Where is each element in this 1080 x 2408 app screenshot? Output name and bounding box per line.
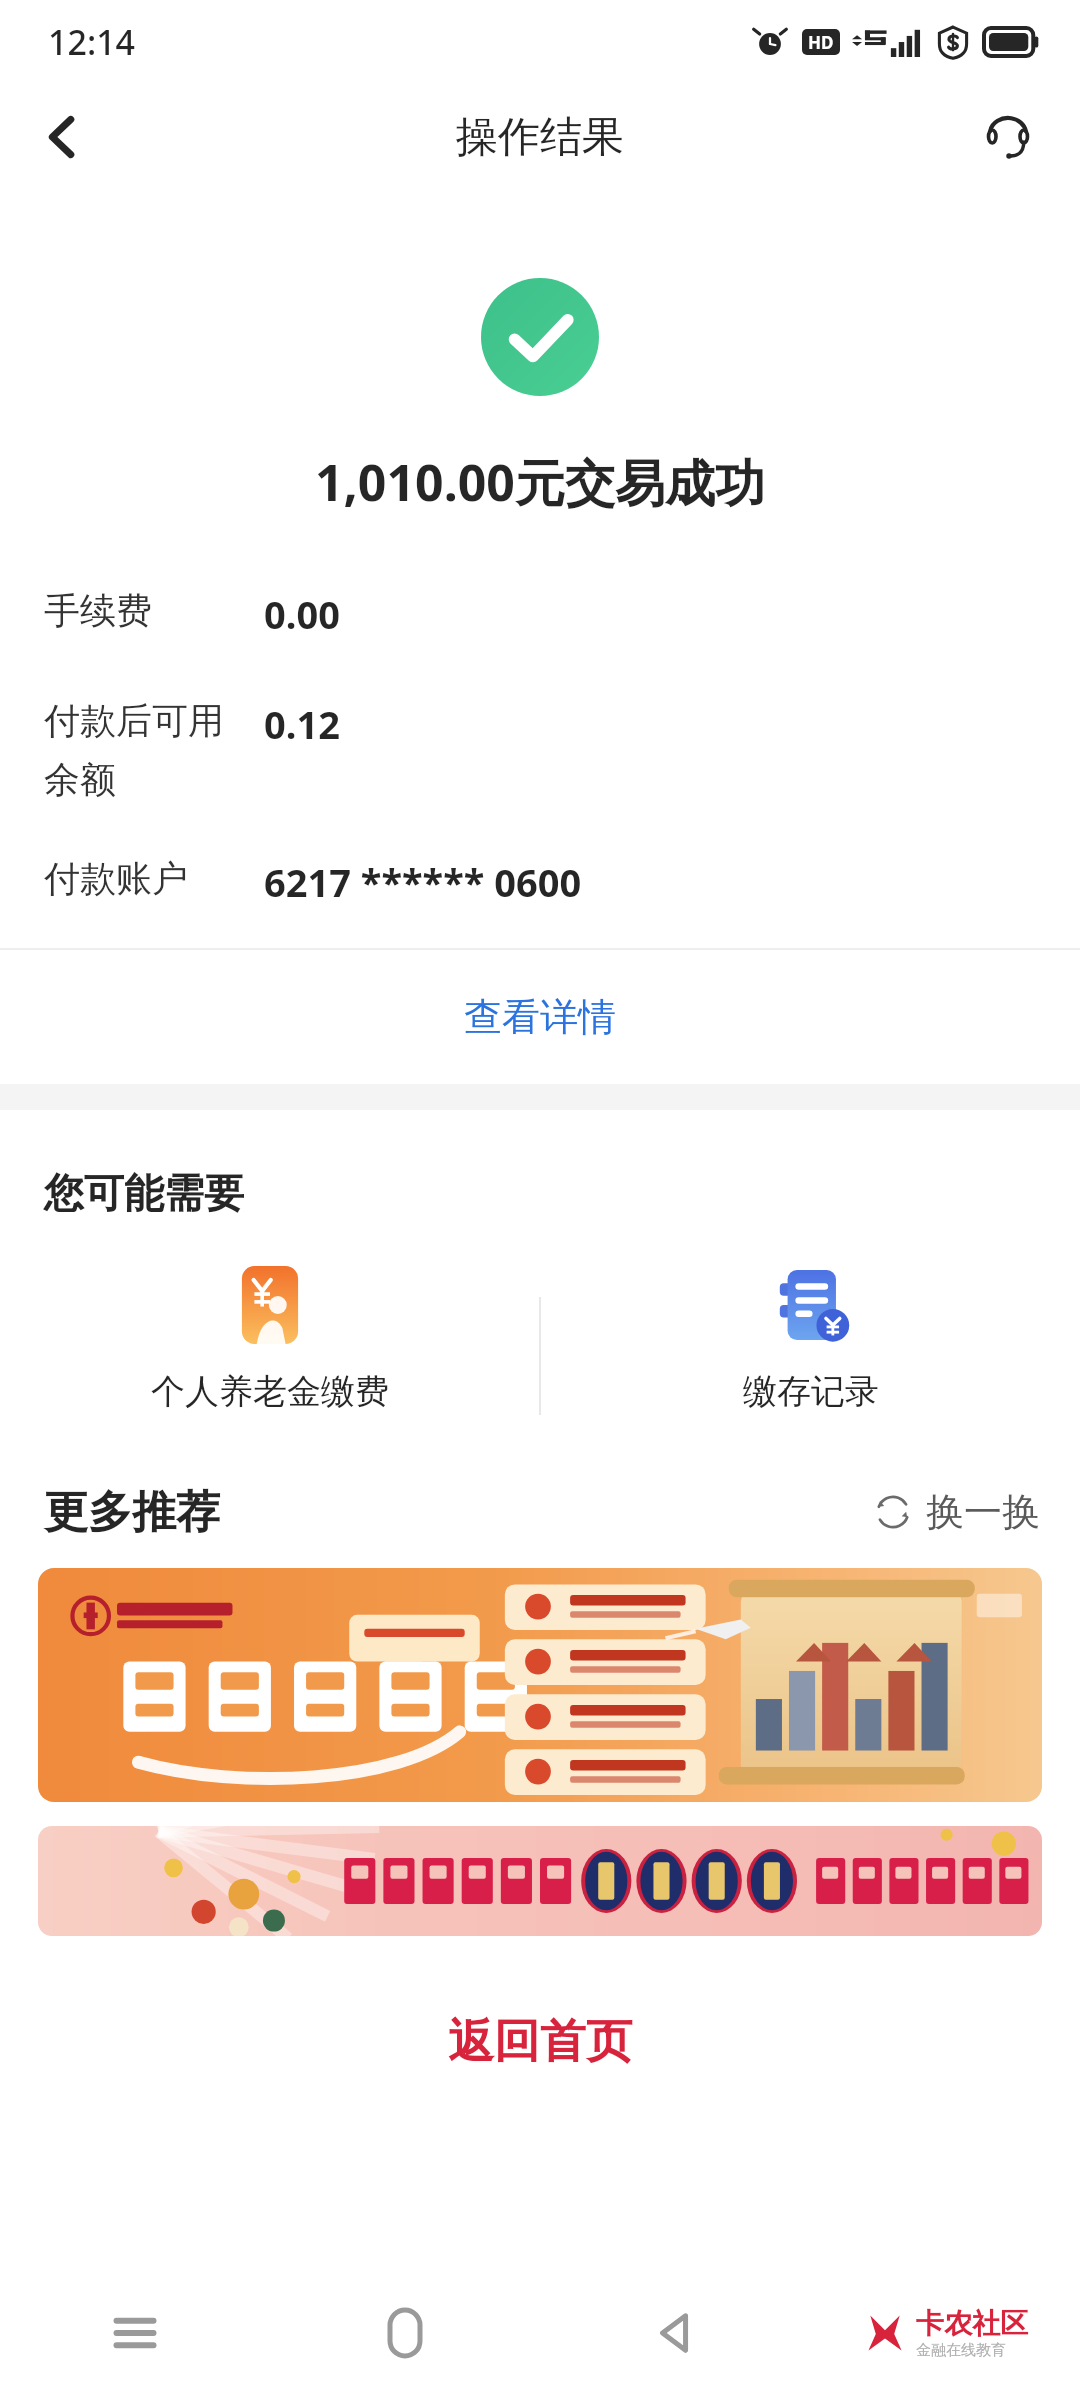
button[interactable] (38, 1826, 1042, 1936)
button[interactable]: 缴存记录 (541, 1266, 1080, 1446)
staticText: 12:14 (48, 19, 136, 65)
staticText: 您可能需要 (44, 1168, 244, 1218)
button[interactable]: 返回首页 (0, 1996, 1080, 2088)
button[interactable]: 换一换 (872, 1488, 1040, 1536)
button[interactable]: Customer service (966, 95, 1050, 179)
staticText: 1,010.00元交易成功 (315, 448, 765, 516)
staticText: 0.12 (264, 698, 340, 750)
staticText: 换一换 (926, 1488, 1040, 1536)
staticText: 查看详情 (464, 993, 616, 1041)
button[interactable] (38, 1568, 1042, 1802)
staticText: HD (808, 31, 834, 54)
button[interactable]: Recents (0, 2273, 270, 2393)
staticText: 卡农社区 (916, 2306, 1028, 2341)
button[interactable]: Back (540, 2273, 810, 2393)
button[interactable]: Home (270, 2273, 540, 2393)
staticText: 付款后可用 (44, 698, 224, 743)
staticText: 个人养老金缴费 (151, 1370, 389, 1413)
staticText: 6217 ****** 0600 (264, 856, 582, 908)
staticText: 金融在线教育 (916, 2341, 1006, 2360)
staticText: 0.00 (264, 588, 340, 640)
button[interactable]: 个人养老金缴费 (0, 1266, 539, 1446)
staticText: 更多推荐 (44, 1485, 220, 1540)
staticText: 操作结果 (456, 111, 624, 164)
button[interactable]: Back (20, 95, 104, 179)
staticText: 缴存记录 (743, 1370, 879, 1413)
staticText: 余额 (44, 757, 116, 802)
staticText: 手续费 (44, 588, 264, 633)
button[interactable]: 查看详情 (0, 950, 1080, 1084)
staticText: 返回首页 (448, 2013, 632, 2071)
staticText: 付款账户 (44, 856, 264, 901)
